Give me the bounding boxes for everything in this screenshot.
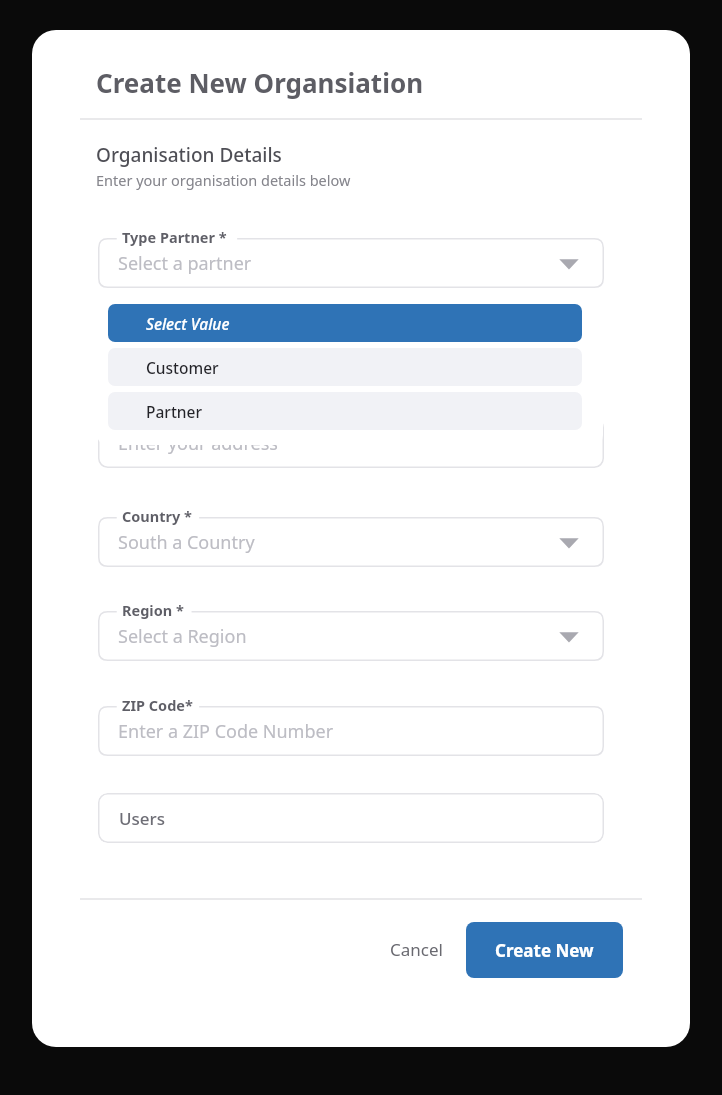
button[interactable]: Customer: [108, 348, 582, 386]
staticText: Enter your organisation details below: [96, 170, 351, 190]
button[interactable]: Select a Region: [98, 611, 604, 661]
staticText: Region *: [122, 600, 184, 620]
staticText: Enter your address: [118, 431, 278, 456]
staticText: Partner: [146, 401, 202, 422]
staticText: Enter a ZIP Code Number: [118, 719, 334, 744]
other: Open dropdown: [558, 625, 580, 647]
button[interactable]: Cancel: [364, 924, 468, 974]
button[interactable]: Users: [98, 793, 604, 843]
staticText: Create New: [495, 939, 594, 962]
button[interactable]: Create New: [466, 922, 623, 978]
button[interactable]: Enter your address: [98, 418, 604, 468]
staticText: ZIP Code*: [122, 695, 193, 715]
staticText: Create New Organsiation: [96, 65, 424, 100]
button[interactable]: Partner: [108, 392, 582, 430]
staticText: Select a Region: [118, 624, 247, 649]
staticText: Select a partner: [118, 251, 252, 276]
button[interactable]: Select a partner: [98, 238, 604, 288]
staticText: Country *: [122, 506, 192, 526]
staticText: South a Country: [118, 530, 255, 555]
button[interactable]: Enter a ZIP Code Number: [98, 706, 604, 756]
staticText: Organisation Details: [96, 142, 282, 168]
button[interactable]: Select Value: [108, 304, 582, 342]
staticText: Users: [119, 807, 166, 830]
staticText: Select Value: [146, 313, 230, 334]
other: Open dropdown: [558, 531, 580, 553]
staticText: Type Partner *: [122, 227, 227, 247]
other: Open dropdown: [558, 252, 580, 274]
staticText: Cancel: [390, 938, 443, 961]
staticText: Customer: [146, 357, 219, 378]
button[interactable]: South a Country: [98, 517, 604, 567]
